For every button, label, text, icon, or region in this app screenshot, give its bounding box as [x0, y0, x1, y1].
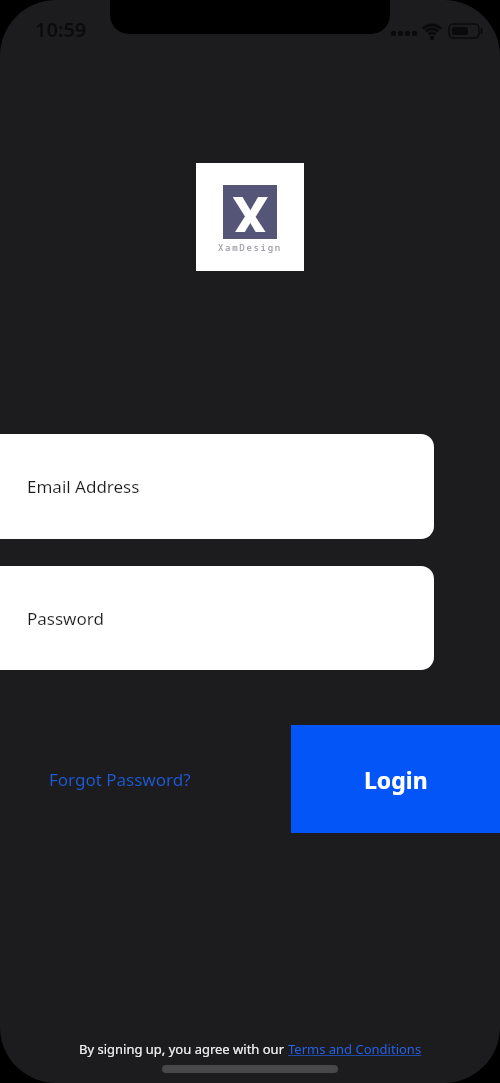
staticText: Forgot Password?: [49, 768, 191, 791]
button[interactable]: Forgot Password?: [30, 758, 210, 800]
staticText: Password: [27, 607, 104, 630]
button[interactable]: Terms and Conditions: [288, 1040, 422, 1058]
staticText: By signing up, you agree with our: [79, 1040, 288, 1058]
staticText: Email Address: [27, 475, 140, 498]
staticText: Login: [364, 764, 428, 795]
staticText: XamDesign: [218, 241, 282, 253]
button[interactable]: Password: [0, 566, 434, 670]
staticText: X: [232, 178, 269, 232]
button[interactable]: Email Address: [0, 434, 434, 539]
staticText: 10:59: [35, 16, 87, 43]
button[interactable]: Login: [291, 725, 500, 833]
